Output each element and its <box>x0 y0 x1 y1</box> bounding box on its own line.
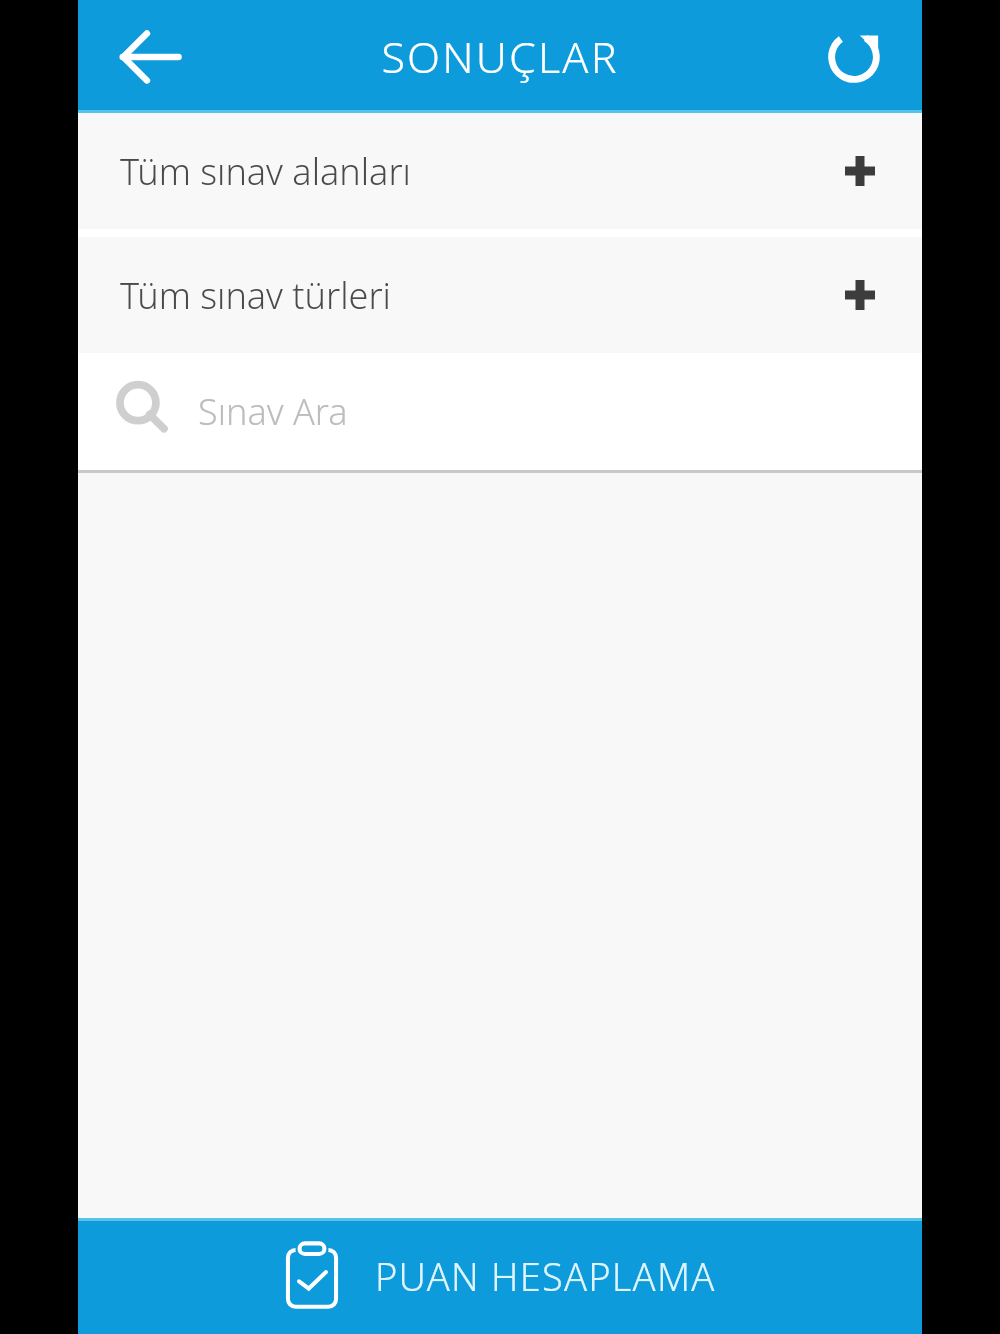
staticText: Sınav Ara <box>198 387 348 436</box>
button[interactable]: Sınav Ara <box>78 353 922 470</box>
staticText: Tüm sınav türleri <box>120 271 838 320</box>
button[interactable]: PUAN HESAPLAMA <box>78 1218 922 1334</box>
button[interactable]: Back <box>102 9 198 105</box>
button[interactable]: Tüm sınav alanları <box>78 113 922 229</box>
staticText: SONUÇLAR <box>381 27 619 86</box>
staticText: Tüm sınav alanları <box>120 147 838 196</box>
staticText: PUAN HESAPLAMA <box>375 1250 716 1302</box>
button[interactable]: Refresh <box>806 9 902 105</box>
button[interactable]: Tüm sınav türleri <box>78 237 922 353</box>
